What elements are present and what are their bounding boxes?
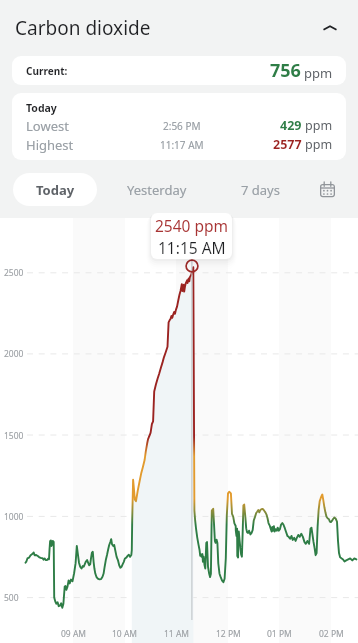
button[interactable]: Collapse xyxy=(308,6,352,50)
staticText: 12 PM xyxy=(216,628,241,640)
staticText: ppm xyxy=(304,64,333,82)
staticText: 429 xyxy=(280,117,302,134)
staticText: 1000 xyxy=(4,511,24,523)
staticText: Yesterday xyxy=(127,181,187,199)
staticText: 2500 xyxy=(4,267,24,279)
staticText: Today xyxy=(36,181,75,199)
staticText: 1500 xyxy=(4,430,24,442)
staticText: 11 AM xyxy=(164,628,190,640)
button[interactable]: 7 days xyxy=(220,173,300,206)
button[interactable]: Yesterday xyxy=(113,173,200,206)
staticText: 2577 xyxy=(273,136,302,153)
staticText: 756 xyxy=(270,58,301,83)
staticText: ppm xyxy=(305,117,333,134)
staticText: 10 AM xyxy=(112,628,138,640)
staticText: Carbon dioxide xyxy=(15,15,151,41)
button[interactable]: Current: xyxy=(12,56,346,85)
staticText: Highest xyxy=(26,136,74,154)
button[interactable]: Pick date xyxy=(311,173,344,206)
staticText: 2000 xyxy=(4,348,24,360)
staticText: 11:17 AM xyxy=(160,138,204,152)
staticText: 7 days xyxy=(241,181,280,199)
staticText: Today xyxy=(26,101,57,115)
staticText: 2540 ppm xyxy=(155,215,229,236)
staticText: ppm xyxy=(305,136,333,153)
staticText: Lowest xyxy=(26,117,69,135)
staticText: 09 AM xyxy=(61,628,87,640)
button[interactable]: Today xyxy=(12,93,346,160)
button[interactable]: Today xyxy=(13,173,97,206)
staticText: 11:15 AM xyxy=(158,237,226,258)
staticText: 500 xyxy=(4,592,19,604)
staticText: 02 PM xyxy=(319,628,344,640)
staticText: 2:56 PM xyxy=(163,119,201,133)
staticText: 01 PM xyxy=(267,628,292,640)
staticText: Current: xyxy=(26,64,68,78)
